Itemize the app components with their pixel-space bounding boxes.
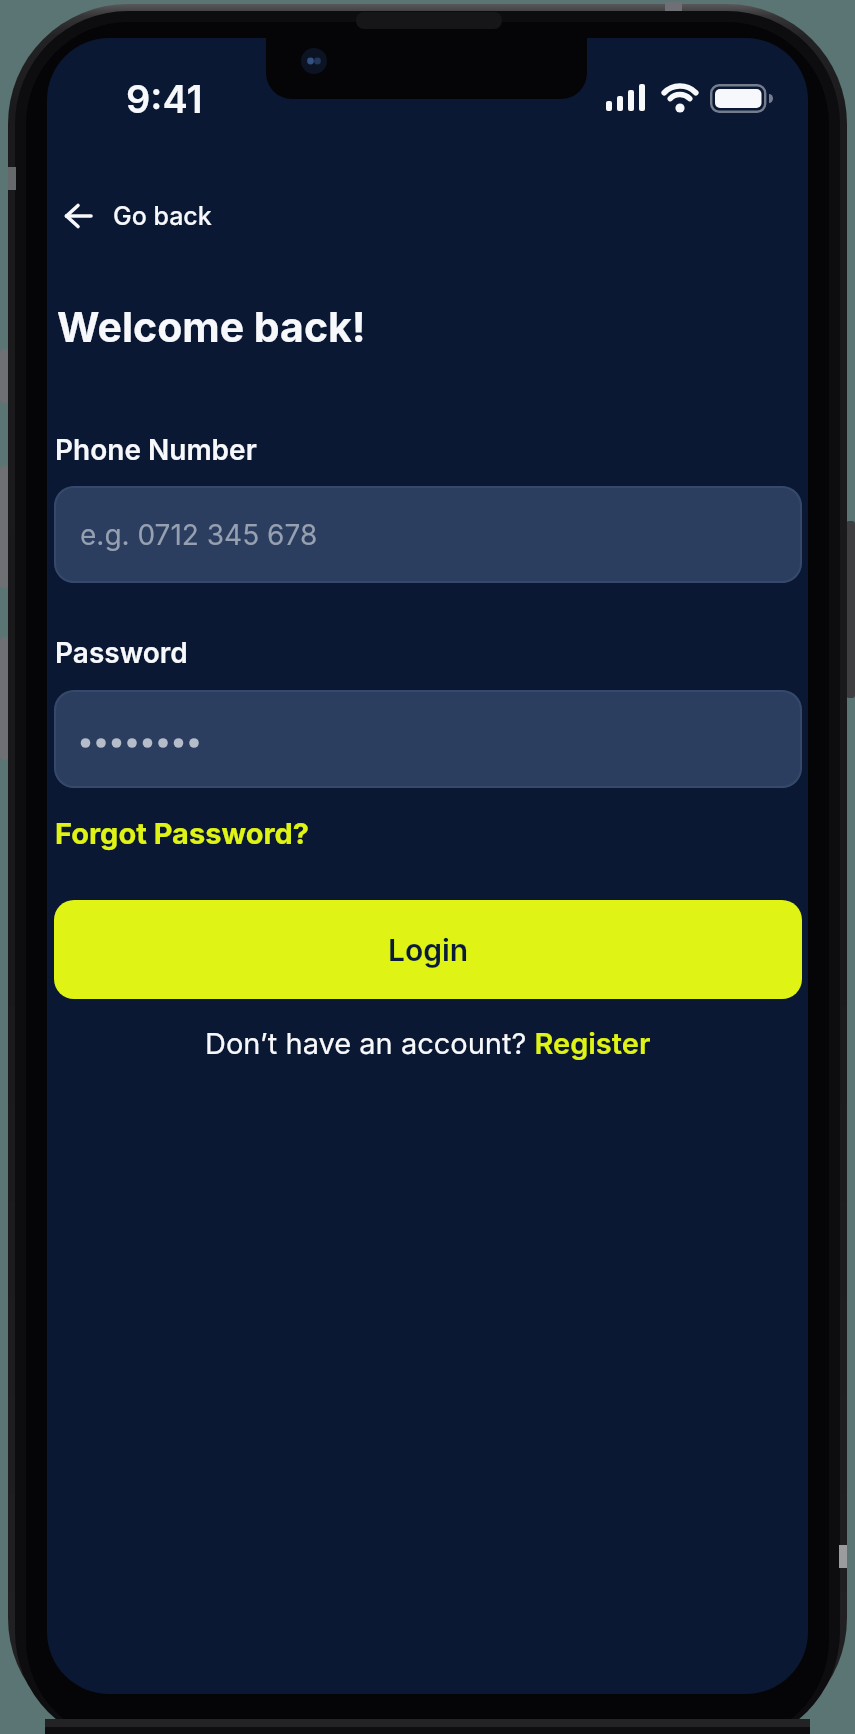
button[interactable]: Go back: [59, 188, 212, 244]
staticText: Go back: [113, 201, 212, 231]
button[interactable]: e.g. 0712 345 678: [54, 486, 802, 583]
staticText: Don’t have an account? Register: [205, 1026, 651, 1061]
staticText: Welcome back!: [57, 302, 366, 352]
staticText: Phone Number: [55, 433, 257, 467]
button[interactable]: Don’t have an account? Register: [47, 1026, 808, 1061]
button[interactable]: [54, 690, 802, 788]
button[interactable]: Forgot Password?: [55, 816, 310, 851]
staticText: e.g. 0712 345 678: [80, 518, 318, 552]
staticText: Password: [55, 636, 188, 670]
staticText: Login: [388, 932, 469, 968]
staticText: 9:41: [126, 76, 203, 122]
button[interactable]: Login: [54, 900, 802, 999]
